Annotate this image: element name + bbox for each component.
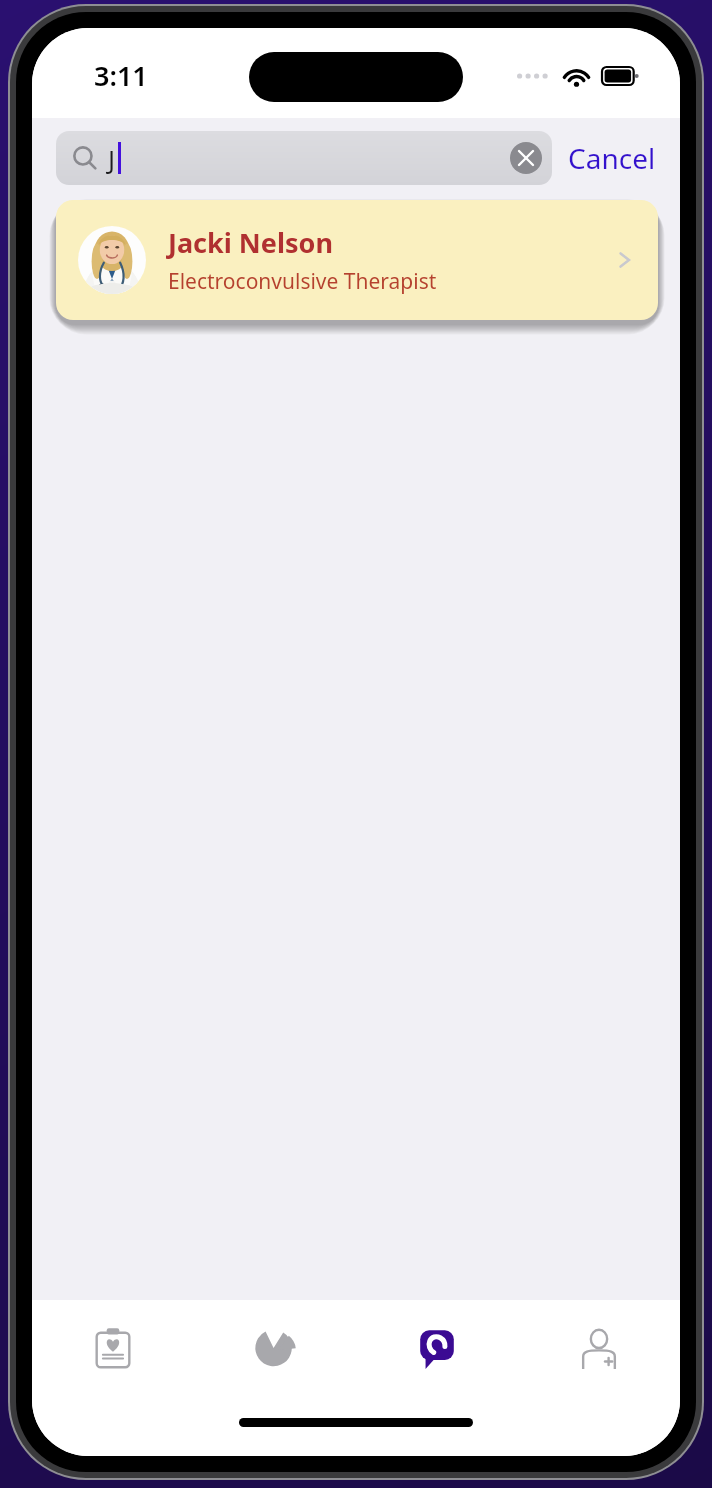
button[interactable]: Add contact bbox=[518, 1300, 680, 1396]
button[interactable]: J bbox=[56, 131, 552, 185]
button[interactable]: Calls bbox=[356, 1300, 518, 1396]
button[interactable]: Jacki Nelson bbox=[56, 200, 658, 320]
button[interactable]: Clear search bbox=[510, 142, 542, 174]
button[interactable]: Statistics bbox=[194, 1300, 356, 1396]
button[interactable]: Records bbox=[32, 1300, 194, 1396]
staticText: Electroconvulsive Therapist bbox=[168, 267, 437, 296]
staticText: Cancel bbox=[568, 139, 656, 177]
staticText: 3:11 bbox=[94, 57, 148, 94]
staticText: Jacki Nelson bbox=[168, 224, 333, 261]
button[interactable]: Cancel bbox=[566, 133, 658, 183]
staticText: J bbox=[108, 141, 116, 176]
